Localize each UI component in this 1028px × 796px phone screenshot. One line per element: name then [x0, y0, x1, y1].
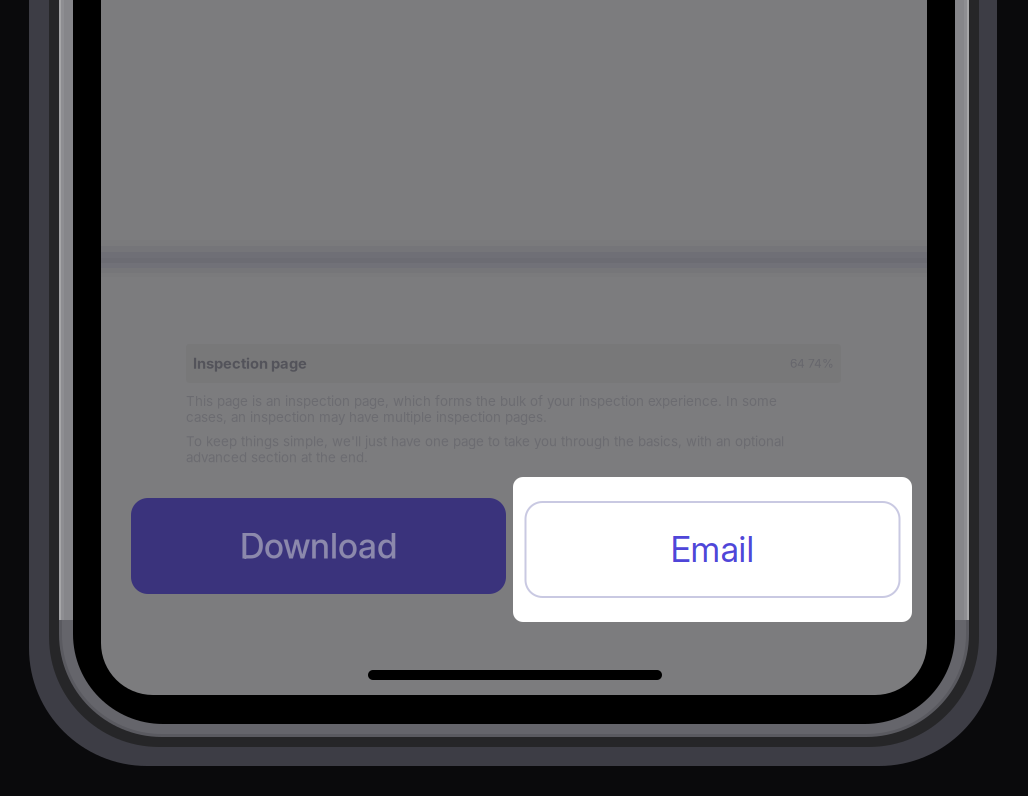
staticText: Inspection page [193, 355, 307, 372]
staticText: This page is an inspection page, which f… [186, 393, 777, 425]
staticText: 64 74% [790, 356, 834, 371]
button[interactable]: Email [525, 502, 899, 597]
staticText: To keep things simple, we'll just have o… [186, 433, 784, 466]
staticText: Email [670, 528, 754, 570]
button[interactable]: Download [131, 498, 506, 594]
staticText: Download [240, 525, 397, 567]
